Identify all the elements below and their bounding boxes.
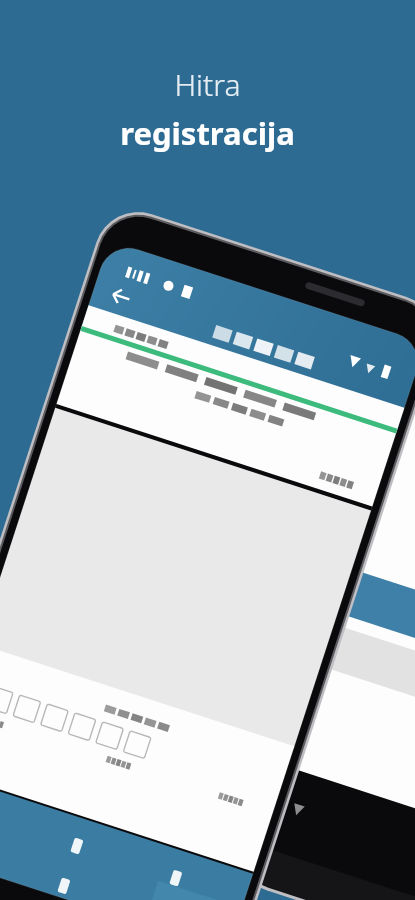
staticText: Hitra [174, 64, 241, 105]
staticText: registracija [120, 112, 295, 154]
button[interactable]: Registracija screenshot [0, 0, 415, 900]
